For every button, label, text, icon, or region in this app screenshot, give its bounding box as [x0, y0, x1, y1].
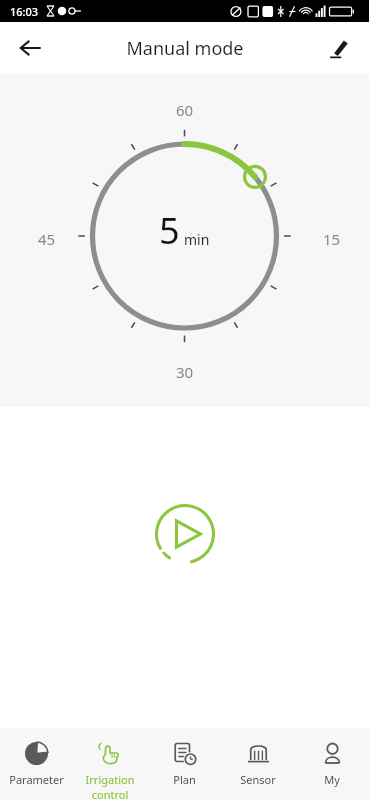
staticText: My: [324, 772, 340, 787]
staticText: Plan: [173, 772, 196, 787]
button[interactable]: My: [295, 728, 369, 800]
button[interactable]: Back: [8, 26, 52, 70]
staticText: Parameter: [9, 772, 64, 787]
button[interactable]: Parameter: [0, 728, 73, 800]
button[interactable]: Edit: [317, 26, 361, 70]
staticText: 15: [323, 229, 341, 249]
staticText: min: [184, 230, 210, 249]
staticText: 60: [176, 100, 194, 120]
button[interactable]: Duration dial, 5 minutes: [0, 74, 369, 407]
staticText: 5: [159, 206, 180, 255]
button[interactable]: Start irrigation: [152, 501, 218, 567]
staticText: Sensor: [240, 772, 276, 787]
staticText: 16:03: [10, 4, 39, 19]
button[interactable]: Plan: [147, 728, 221, 800]
staticText: 45: [38, 229, 56, 249]
staticText: 30: [176, 362, 194, 382]
button[interactable]: Irrigation control: [73, 728, 147, 800]
staticText: Manual mode: [126, 36, 244, 61]
button[interactable]: Sensor: [221, 728, 295, 800]
staticText: Irrigation control: [73, 772, 147, 800]
